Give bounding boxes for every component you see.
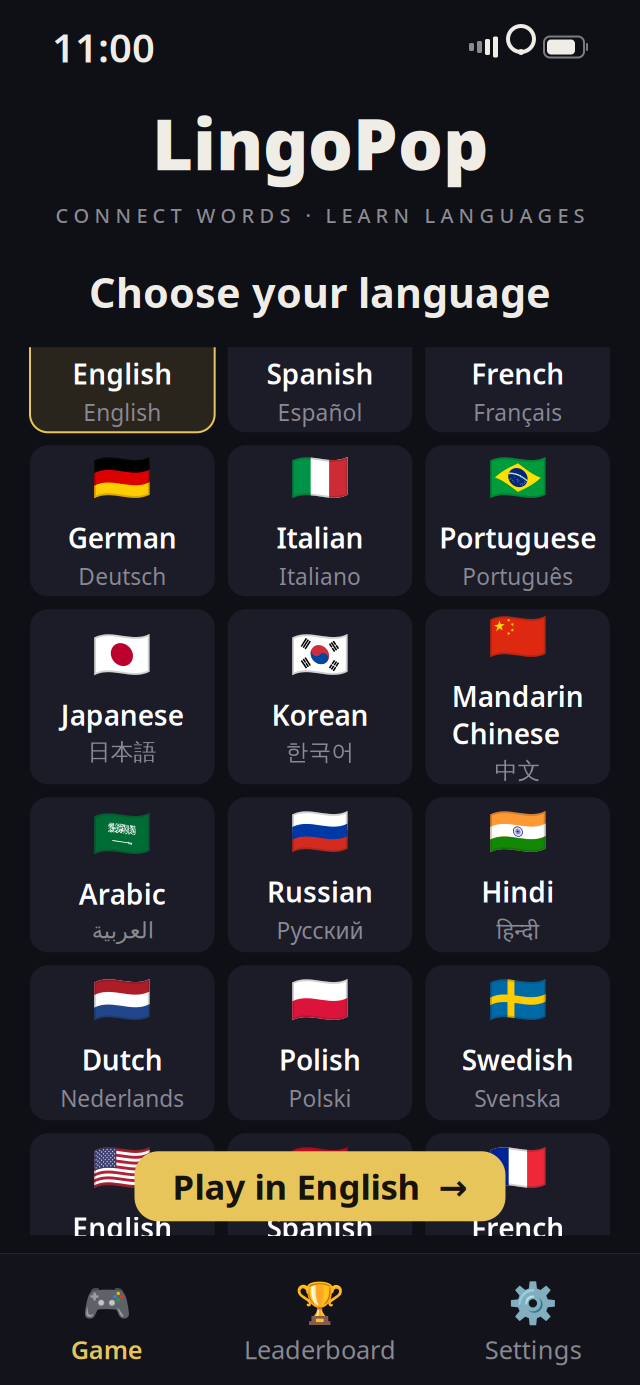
staticText: Korean	[271, 696, 368, 733]
button[interactable]: ⚙️	[427, 1276, 640, 1370]
staticText: 🇮🇳	[488, 804, 548, 859]
staticText: Nederlands	[60, 1083, 184, 1113]
button[interactable]: 🇪🇸	[228, 281, 412, 432]
staticText: C O N N E C T W O R D S · L E A R N L A …	[55, 202, 584, 228]
button[interactable]: 🇸🇦	[30, 797, 215, 952]
staticText: Swedish	[462, 1041, 574, 1078]
staticText: 🇨🇳	[488, 609, 548, 664]
button[interactable]: 🇫🇷	[425, 281, 610, 432]
staticText: 🇪🇸	[290, 286, 350, 341]
staticText: हिन्दी	[496, 915, 539, 945]
staticText: Svenska	[474, 1083, 561, 1113]
staticText: Polski	[288, 1083, 351, 1113]
button[interactable]: 🇮🇹	[228, 445, 412, 596]
staticText: LingoPop	[152, 96, 488, 190]
staticText: English	[83, 397, 161, 427]
staticText: 🇩🇪	[92, 450, 152, 505]
staticText: Français	[473, 1251, 562, 1281]
button[interactable]: 🇵🇱	[228, 965, 412, 1120]
staticText: Hindi	[481, 873, 554, 910]
staticText: Spanish	[266, 1209, 373, 1246]
staticText: 🇪🇸	[290, 1140, 350, 1195]
button[interactable]: 🇫🇷	[425, 1133, 610, 1288]
staticText: Choose your language	[89, 264, 551, 319]
staticText: 🇰🇷	[290, 627, 350, 682]
staticText: 🇸🇪	[488, 972, 548, 1027]
button[interactable]: 🇪🇸	[228, 1133, 412, 1288]
staticText: 🏆	[295, 1280, 345, 1326]
staticText: Polish	[279, 1041, 361, 1078]
staticText: ⚙️	[508, 1280, 558, 1326]
button[interactable]: 🇺🇸	[30, 281, 215, 432]
staticText: 🇫🇷	[488, 1140, 548, 1195]
staticText: Português	[462, 561, 573, 591]
staticText: English	[72, 1209, 172, 1246]
staticText: Spanish	[266, 355, 373, 392]
button[interactable]: 🇨🇳	[425, 609, 610, 784]
staticText: 🇺🇸	[92, 286, 152, 341]
staticText: Settings	[485, 1333, 582, 1366]
staticText: Game	[71, 1333, 143, 1366]
staticText: Italiano	[279, 561, 361, 591]
button[interactable]: 🇳🇱	[30, 965, 215, 1120]
staticText: Italian	[276, 519, 363, 556]
staticText: 🇺🇸	[92, 1140, 152, 1195]
staticText: 中文	[495, 757, 541, 785]
staticText: Français	[473, 397, 562, 427]
button[interactable]: 🏆	[213, 1276, 427, 1370]
staticText: 🇳🇱	[92, 972, 152, 1027]
button[interactable]: 🇯🇵	[30, 609, 215, 784]
staticText: French	[471, 355, 564, 392]
staticText: English	[72, 355, 172, 392]
staticText: German	[68, 519, 177, 556]
button[interactable]: 🇮🇳	[425, 797, 610, 952]
button[interactable]: 🇩🇪	[30, 445, 215, 596]
staticText: English	[83, 1251, 161, 1281]
staticText: 🇮🇹	[290, 450, 350, 505]
staticText: 11:00	[52, 20, 155, 73]
staticText: Mandarin Chinese	[452, 678, 584, 752]
staticText: French	[471, 1209, 564, 1246]
staticText: Arabic	[79, 875, 166, 912]
staticText: 🇵🇱	[290, 972, 350, 1027]
staticText: Español	[277, 397, 362, 427]
staticText: Deutsch	[78, 561, 166, 591]
staticText: 日本語	[88, 738, 157, 766]
staticText: Portuguese	[439, 519, 596, 556]
staticText: 🇯🇵	[92, 627, 152, 682]
button[interactable]: 🇰🇷	[228, 609, 412, 784]
staticText: Español	[277, 1251, 362, 1281]
staticText: 한국어	[285, 738, 354, 766]
staticText: 🎮	[82, 1280, 132, 1326]
staticText: Russian	[267, 873, 373, 910]
staticText: Play in English →	[172, 1163, 467, 1209]
button[interactable]: 🎮	[0, 1276, 213, 1370]
button[interactable]: 🇧🇷	[425, 445, 610, 596]
staticText: العربية	[91, 917, 153, 943]
staticText: Dutch	[82, 1041, 163, 1078]
staticText: 🇧🇷	[488, 450, 548, 505]
button[interactable]: 🇺🇸	[30, 1133, 215, 1288]
staticText: 🇷🇺	[290, 804, 350, 859]
staticText: Русский	[276, 915, 363, 945]
staticText: 🇫🇷	[488, 286, 548, 341]
button[interactable]: 🇸🇪	[425, 965, 610, 1120]
button[interactable]: 🇷🇺	[228, 797, 412, 952]
button[interactable]: Play in English →	[134, 1151, 505, 1221]
staticText: Japanese	[61, 696, 184, 733]
staticText: 🇸🇦	[92, 806, 152, 861]
staticText: Leaderboard	[244, 1333, 396, 1366]
